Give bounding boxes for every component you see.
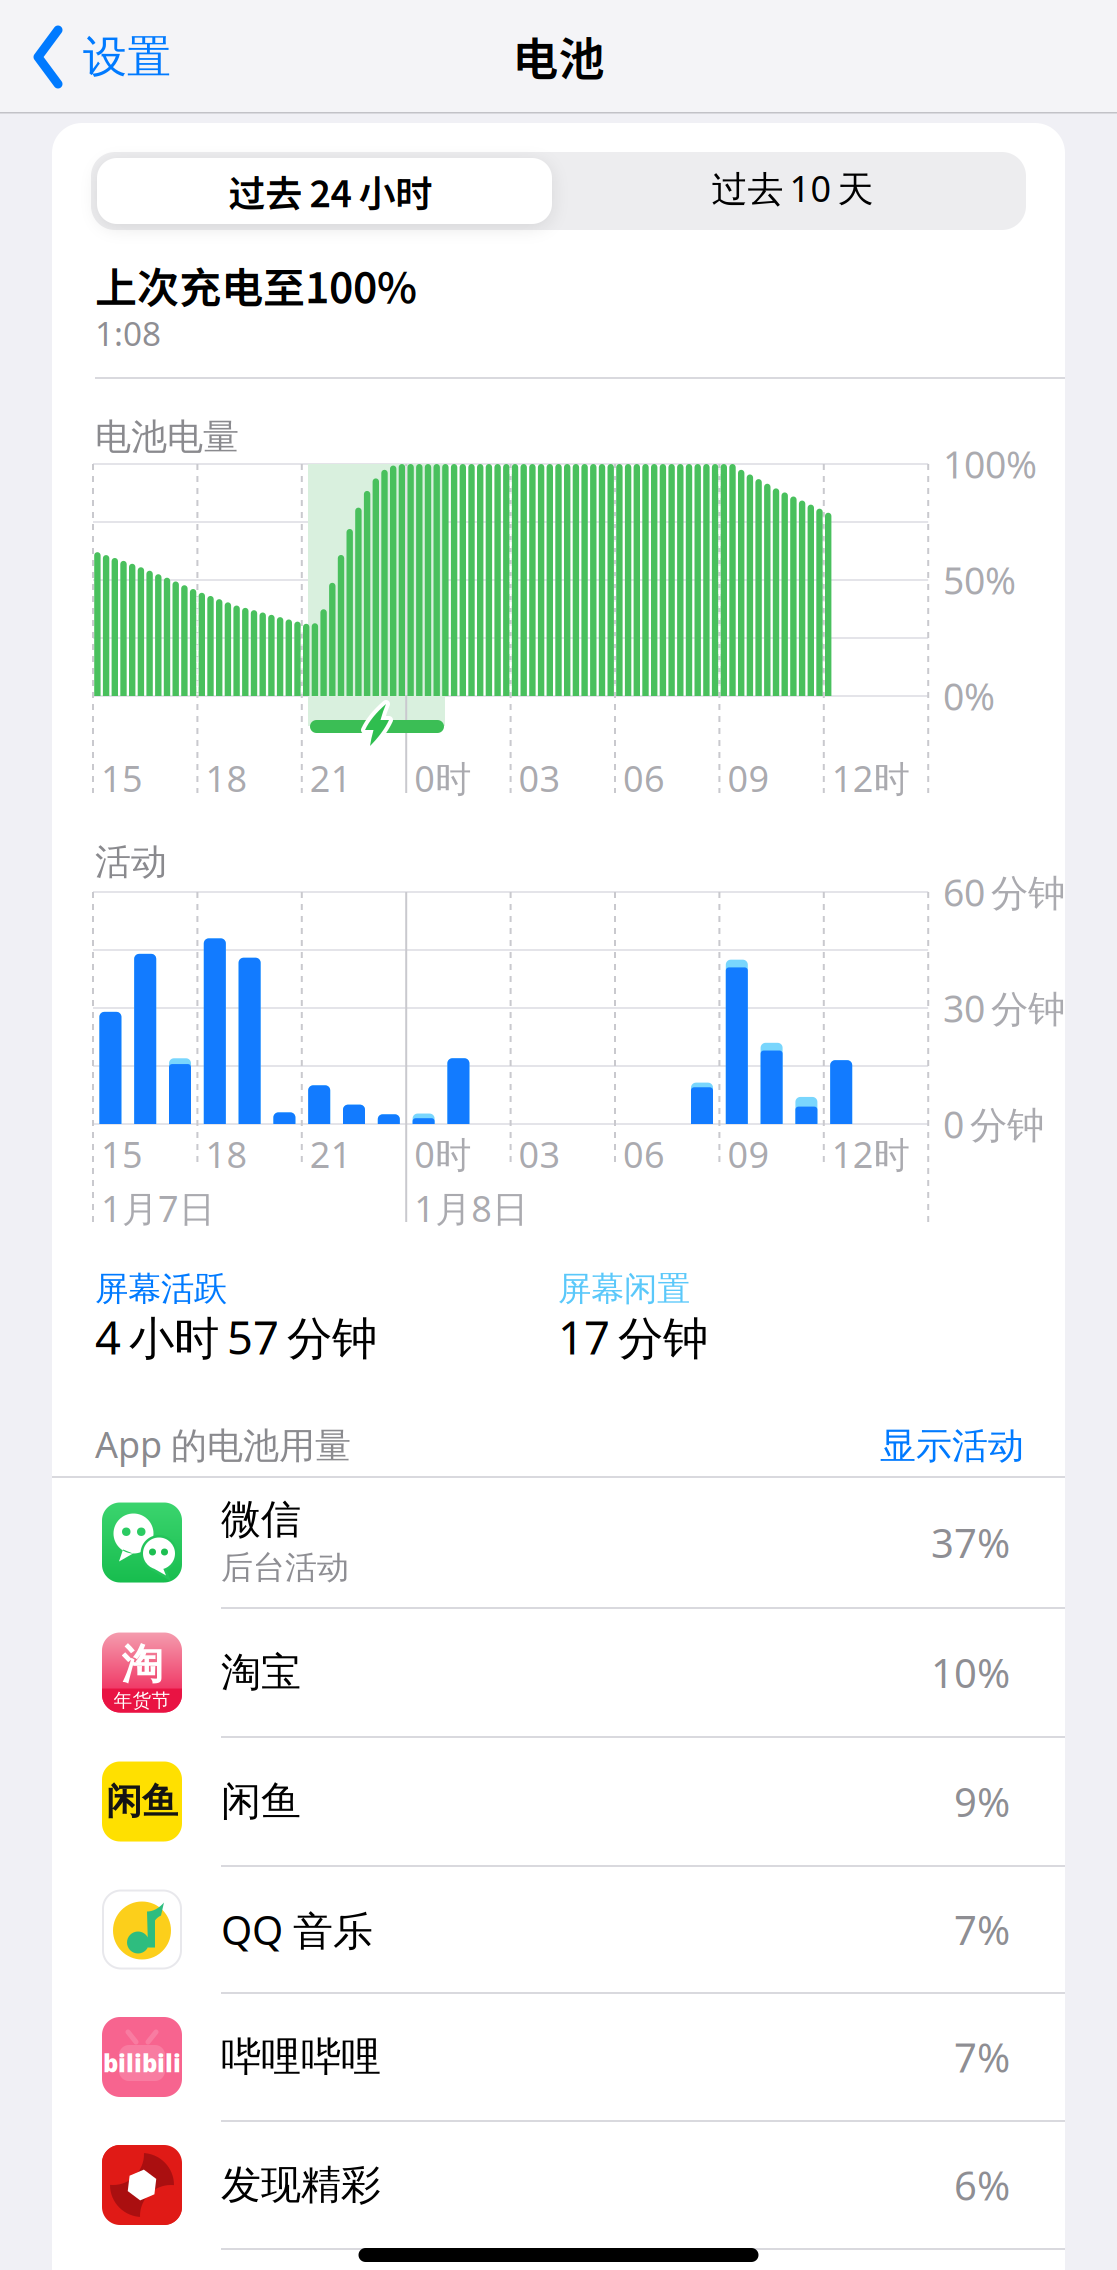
- staticText: QQ 音乐: [221, 1903, 373, 1956]
- staticText: 显示活动: [880, 1424, 1024, 1468]
- button[interactable]: 过去 10 天: [559, 155, 1026, 227]
- staticText: App 的电池用量: [95, 1420, 351, 1468]
- staticText: 0 分钟: [943, 1099, 1044, 1149]
- staticText: 年货节: [113, 1689, 170, 1712]
- staticText: 淘: [121, 1639, 162, 1690]
- staticText: 18: [205, 1130, 247, 1178]
- staticText: 12时: [832, 1130, 910, 1178]
- staticText: 屏幕活跃: [95, 1268, 227, 1309]
- button[interactable]: 微信: [52, 1477, 1065, 1608]
- staticText: 微信: [221, 1495, 301, 1544]
- staticText: 09: [727, 1130, 769, 1178]
- staticText: 屏幕闲置: [558, 1268, 690, 1309]
- staticText: 活动: [95, 840, 167, 884]
- button[interactable]: 淘: [52, 1608, 1065, 1737]
- staticText: 0时: [414, 754, 471, 802]
- button[interactable]: 显示活动: [784, 1414, 1024, 1478]
- staticText: 闲鱼: [106, 1779, 178, 1824]
- staticText: 09: [727, 754, 769, 802]
- staticText: 100%: [943, 439, 1037, 489]
- staticText: 12时: [832, 754, 910, 802]
- button[interactable]: 返回设置: [30, 13, 240, 101]
- staticText: 过去 24 小时: [228, 164, 432, 218]
- staticText: 9%: [954, 1775, 1010, 1828]
- staticText: 0%: [943, 671, 995, 721]
- staticText: 15: [101, 754, 143, 802]
- staticText: 设置: [83, 30, 171, 84]
- staticText: 1月8日: [414, 1184, 528, 1232]
- button[interactable]: 发现精彩: [52, 2121, 1065, 2249]
- staticText: 18: [205, 754, 247, 802]
- staticText: 21: [310, 1130, 352, 1178]
- button[interactable]: 过去 24 小时: [97, 158, 552, 224]
- button[interactable]: bilibili: [52, 1993, 1065, 2121]
- staticText: 06: [623, 754, 665, 802]
- staticText: 7%: [954, 1903, 1010, 1956]
- staticText: 03: [519, 754, 561, 802]
- staticText: 发现精彩: [221, 2160, 381, 2209]
- staticText: 4 小时 57 分钟: [95, 1307, 377, 1367]
- staticText: 17 分钟: [558, 1307, 708, 1367]
- staticText: 1月7日: [101, 1184, 215, 1232]
- staticText: 哔哩哔哩: [221, 2032, 381, 2081]
- staticText: 30 分钟: [943, 983, 1065, 1033]
- staticText: 10%: [931, 1646, 1010, 1699]
- button[interactable]: 闲鱼: [52, 1737, 1065, 1866]
- staticText: 后台活动: [221, 1548, 349, 1587]
- staticText: 50%: [943, 555, 1016, 605]
- staticText: 60 分钟: [943, 867, 1065, 917]
- staticText: 0时: [414, 1130, 471, 1178]
- staticText: 37%: [931, 1516, 1010, 1569]
- staticText: 淘宝: [221, 1648, 301, 1697]
- staticText: bilibili: [103, 2047, 181, 2079]
- staticText: 电池电量: [95, 415, 239, 459]
- staticText: 15: [101, 1130, 143, 1178]
- staticText: 闲鱼: [221, 1777, 301, 1826]
- staticText: 7%: [954, 2030, 1010, 2083]
- staticText: 上次充电至100%: [95, 255, 417, 315]
- button[interactable]: QQ 音乐: [52, 1866, 1065, 1993]
- staticText: 过去 10 天: [711, 164, 873, 212]
- staticText: 06: [623, 1130, 665, 1178]
- staticText: 03: [519, 1130, 561, 1178]
- staticText: 1:08: [95, 311, 161, 355]
- staticText: 21: [310, 754, 352, 802]
- staticText: 电池: [512, 23, 604, 89]
- staticText: 6%: [954, 2158, 1010, 2211]
